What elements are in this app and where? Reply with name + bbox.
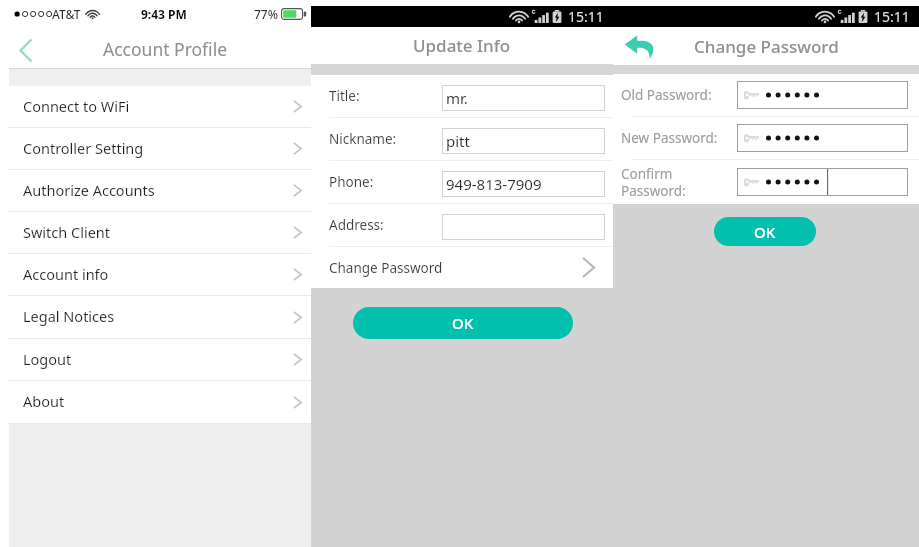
staticText: Phone: — [329, 173, 374, 191]
button[interactable]: pitt — [442, 128, 605, 154]
staticText: Nickname: — [329, 130, 397, 148]
staticText: OK — [754, 222, 776, 242]
button[interactable]: mr. — [442, 85, 605, 111]
button[interactable] — [737, 124, 908, 152]
staticText: pitt — [446, 131, 470, 151]
staticText: Account info — [23, 264, 109, 284]
button[interactable]: Controller Setting — [0, 128, 311, 169]
button[interactable]: Back — [613, 27, 663, 65]
button[interactable]: Back — [0, 28, 52, 68]
button[interactable]: Change Password — [311, 247, 613, 288]
button[interactable]: Connect to WiFi — [0, 86, 311, 127]
button[interactable]: OK — [353, 307, 573, 339]
button[interactable]: Account info — [0, 254, 311, 295]
staticText: Title: — [329, 87, 360, 105]
button[interactable] — [737, 168, 908, 196]
staticText: 15:11 — [874, 7, 910, 26]
staticText: Confirm Password: — [621, 165, 686, 200]
staticText: New Password: — [621, 129, 718, 147]
button[interactable]: Legal Notices — [0, 296, 311, 338]
staticText: 77% — [254, 6, 278, 22]
staticText: OK — [452, 313, 474, 333]
staticText: Legal Notices — [23, 306, 115, 326]
staticText: Switch Client — [23, 222, 111, 242]
staticText: Authorize Accounts — [23, 180, 155, 200]
staticText: 9:43 PM — [141, 6, 187, 22]
button[interactable] — [442, 214, 605, 240]
staticText: Account Profile — [103, 37, 228, 61]
staticText: Change Password — [694, 35, 839, 58]
button[interactable]: Logout — [0, 339, 311, 380]
staticText: 15:11 — [568, 7, 604, 26]
button[interactable] — [737, 81, 908, 109]
staticText: Controller Setting — [23, 138, 144, 158]
button[interactable]: 949-813-7909 — [442, 171, 605, 197]
button[interactable]: About — [0, 381, 311, 423]
staticText: Change Password — [329, 259, 443, 277]
staticText: Connect to WiFi — [23, 96, 130, 116]
button[interactable]: OK — [714, 217, 816, 246]
button[interactable]: Switch Client — [0, 212, 311, 253]
staticText: Address: — [329, 216, 384, 234]
staticText: AT&T — [52, 6, 81, 22]
staticText: 949-813-7909 — [446, 174, 542, 194]
button[interactable]: Authorize Accounts — [0, 170, 311, 211]
staticText: Update Info — [413, 34, 511, 57]
staticText: About — [23, 391, 65, 411]
staticText: mr. — [446, 88, 468, 108]
staticText: Old Password: — [621, 86, 712, 104]
staticText: Logout — [23, 349, 72, 369]
